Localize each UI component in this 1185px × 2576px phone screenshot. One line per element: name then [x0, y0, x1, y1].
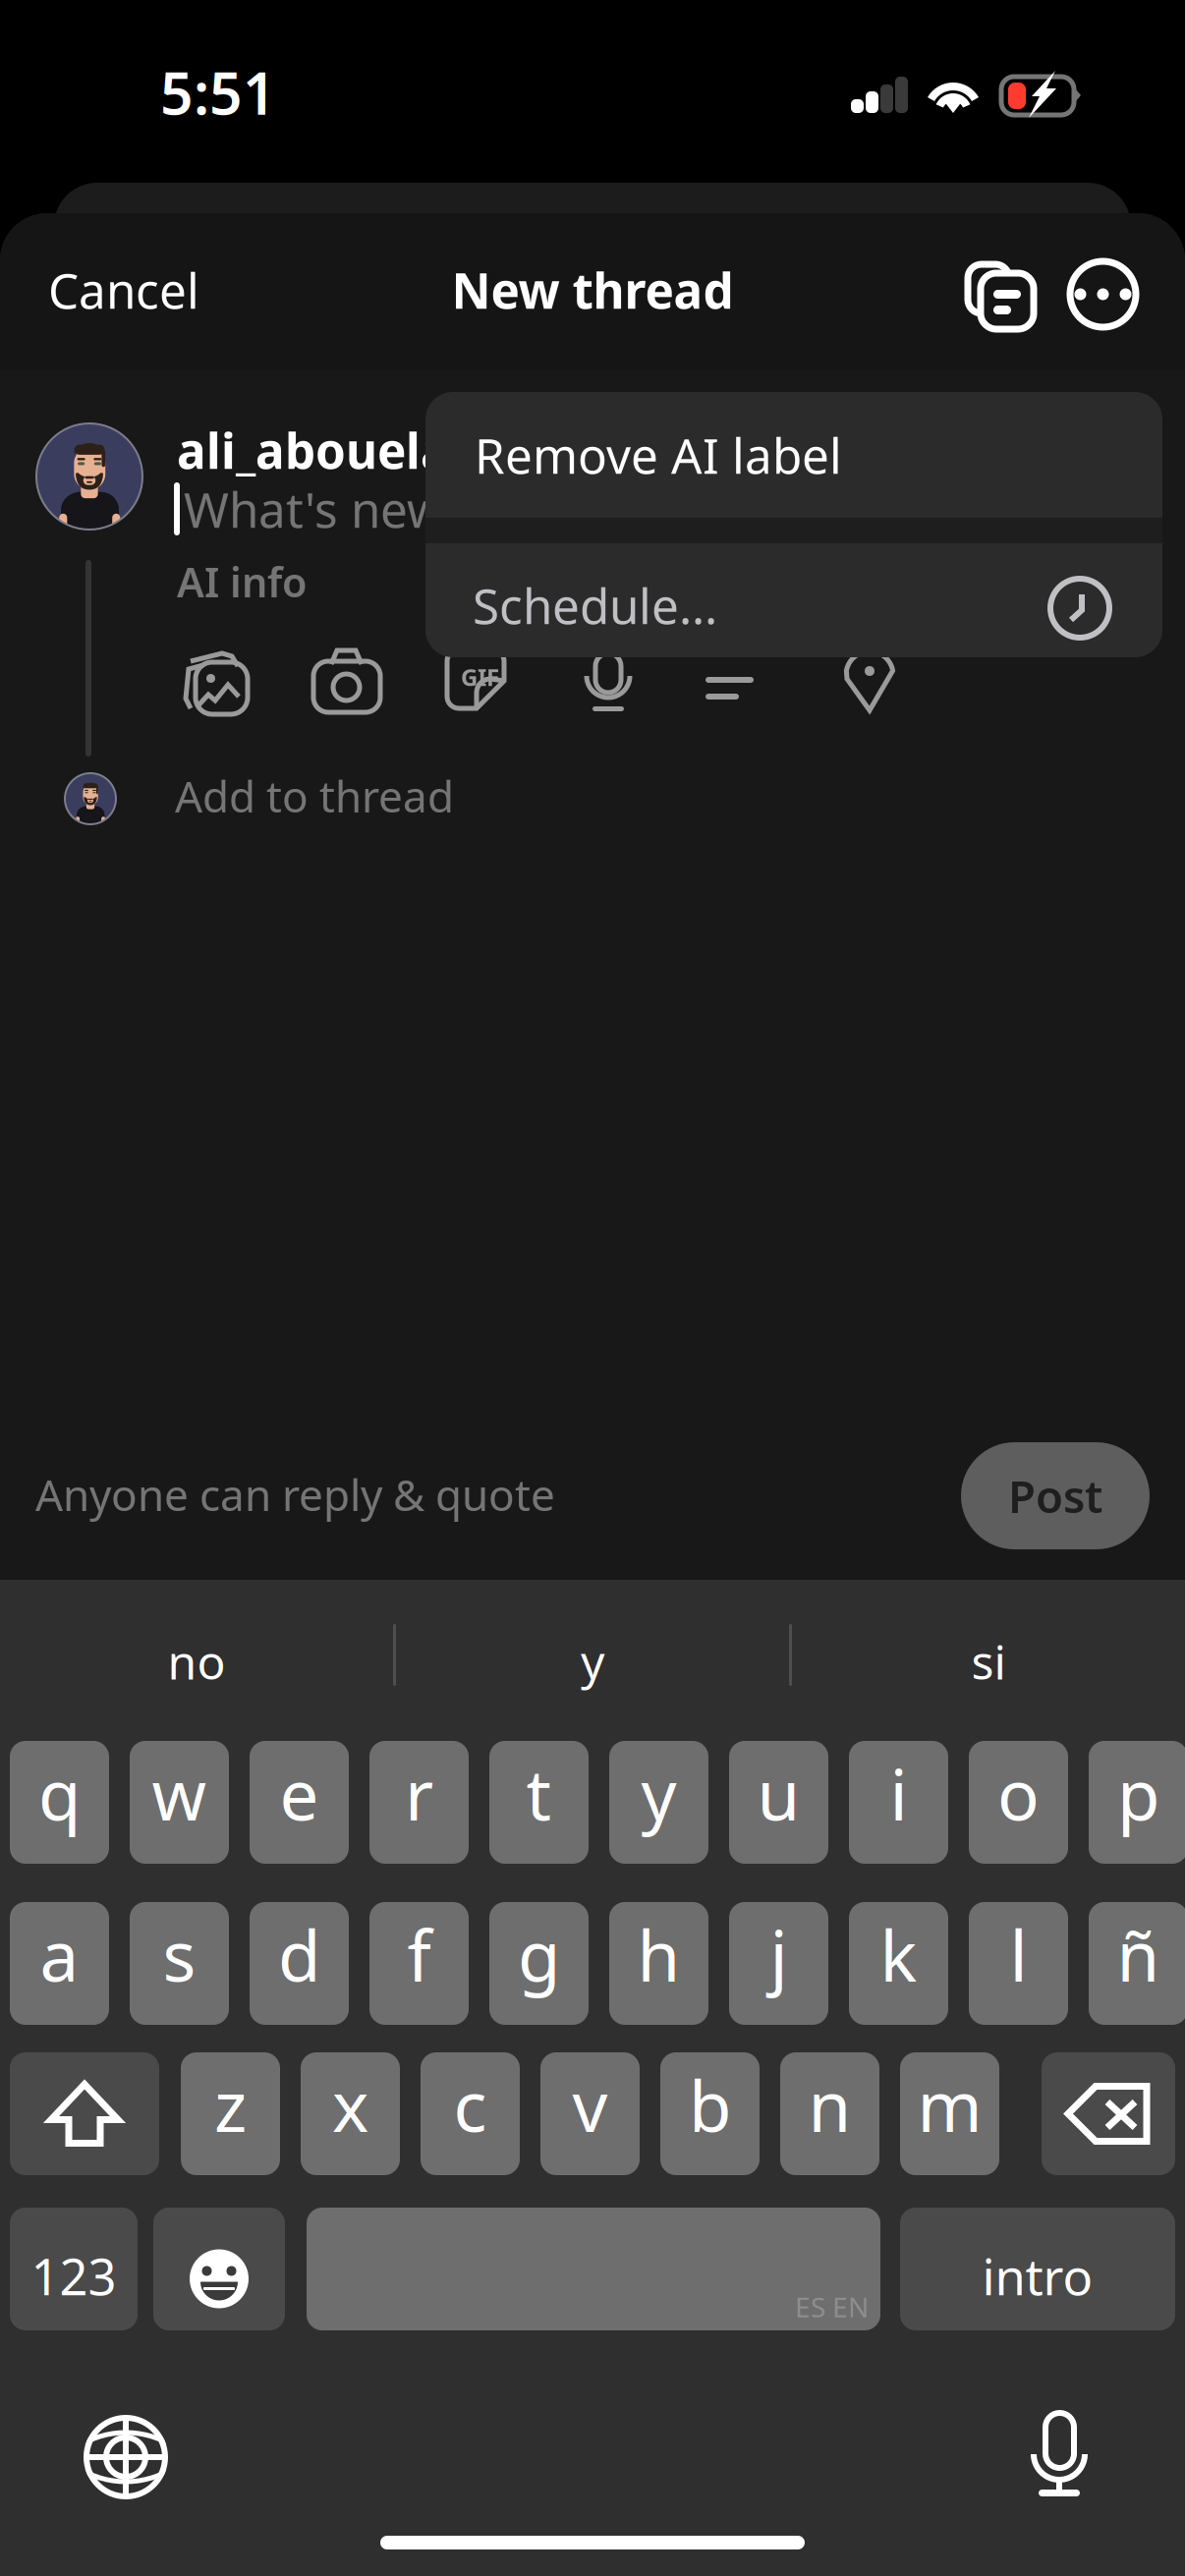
staticText: v: [572, 2059, 608, 2151]
button[interactable]: q: [10, 1741, 109, 1864]
button[interactable]: Remove AI label: [425, 392, 1113, 518]
button[interactable]: i: [849, 1741, 948, 1864]
button[interactable]: Post: [961, 1442, 1150, 1549]
staticText: w: [152, 1747, 207, 1840]
staticText: r: [405, 1747, 433, 1840]
staticText: 5:51: [160, 54, 276, 131]
button[interactable]: j: [729, 1902, 828, 2025]
button[interactable]: Location: [835, 645, 904, 716]
staticText: y: [581, 1630, 604, 1693]
button[interactable]: Text: [705, 645, 773, 716]
staticText: m: [917, 2059, 982, 2151]
staticText: u: [757, 1747, 800, 1840]
button[interactable]: z: [181, 2052, 280, 2175]
staticText: x: [332, 2059, 368, 2151]
staticText: New thread: [451, 258, 734, 322]
staticText: g: [518, 1909, 560, 2001]
button[interactable]: t: [489, 1741, 589, 1864]
button[interactable]: v: [540, 2052, 640, 2175]
button[interactable]: h: [609, 1902, 708, 2025]
button[interactable]: More options: [1066, 257, 1140, 331]
staticText: Post: [1008, 1466, 1102, 1525]
button[interactable]: u: [729, 1741, 828, 1864]
button[interactable]: n: [780, 2052, 879, 2175]
button[interactable]: Drafts: [965, 262, 1044, 341]
staticText: t: [526, 1747, 552, 1840]
button[interactable]: p: [1089, 1741, 1185, 1864]
staticText: ali_abouelatta: [177, 418, 521, 482]
button[interactable]: c: [421, 2052, 520, 2175]
staticText: y: [641, 1747, 677, 1840]
button[interactable]: Schedule...: [425, 543, 1162, 657]
staticText: l: [1010, 1909, 1027, 2001]
button[interactable]: ñ: [1089, 1902, 1185, 2025]
button[interactable]: d: [250, 1902, 349, 2025]
button[interactable]: y: [609, 1741, 708, 1864]
staticText: intro: [982, 2243, 1093, 2309]
staticText: What's new?: [184, 477, 467, 541]
button[interactable]: l: [969, 1902, 1068, 2025]
button[interactable]: Switch keyboard: [84, 2415, 168, 2499]
staticText: k: [880, 1909, 917, 2001]
staticText: z: [214, 2059, 247, 2151]
staticText: o: [997, 1747, 1040, 1840]
staticText: no: [168, 1630, 226, 1693]
staticText: d: [278, 1909, 320, 2001]
button[interactable]: intro: [900, 2208, 1175, 2330]
button[interactable]: x: [301, 2052, 400, 2175]
staticText: p: [1117, 1747, 1159, 1840]
button[interactable]: m: [900, 2052, 999, 2175]
button[interactable]: Add to thread: [175, 768, 588, 823]
button[interactable]: 123: [10, 2208, 138, 2330]
button[interactable]: Dictation: [1032, 2413, 1087, 2497]
button[interactable]: GIF: [445, 647, 514, 718]
button[interactable]: Backspace: [1042, 2052, 1175, 2175]
button[interactable]: Emoji: [153, 2208, 285, 2330]
button[interactable]: k: [849, 1902, 948, 2025]
staticText: e: [280, 1747, 319, 1840]
staticText: q: [38, 1747, 81, 1840]
button[interactable]: Space: [307, 2208, 880, 2330]
staticText: n: [808, 2059, 851, 2151]
staticText: Anyone can reply & quote: [35, 1466, 555, 1523]
button[interactable]: g: [489, 1902, 589, 2025]
staticText: si: [971, 1630, 1006, 1693]
staticText: GIF: [461, 661, 499, 693]
button[interactable]: AI info: [177, 558, 373, 605]
button[interactable]: o: [969, 1741, 1068, 1864]
button[interactable]: Audio: [574, 645, 643, 716]
staticText: i: [890, 1747, 907, 1840]
button[interactable]: a: [10, 1902, 109, 2025]
button[interactable]: e: [250, 1741, 349, 1864]
staticText: Add to thread: [175, 767, 454, 824]
staticText: ES EN: [795, 2289, 869, 2325]
staticText: ñ: [1117, 1909, 1160, 2001]
button[interactable]: s: [130, 1902, 229, 2025]
staticText: a: [40, 1909, 79, 2001]
staticText: f: [407, 1909, 431, 2001]
button[interactable]: w: [130, 1741, 229, 1864]
button[interactable]: Photos: [182, 645, 251, 716]
staticText: c: [453, 2059, 487, 2151]
staticText: 123: [31, 2243, 116, 2309]
button[interactable]: Camera: [312, 645, 381, 716]
staticText: s: [163, 1909, 196, 2001]
button[interactable]: f: [369, 1902, 469, 2025]
staticText: j: [770, 1909, 788, 2001]
staticText: Schedule...: [473, 573, 717, 637]
staticText: AI info: [177, 555, 308, 609]
button[interactable]: r: [369, 1741, 469, 1864]
button[interactable]: Cancel: [48, 241, 245, 339]
staticText: h: [637, 1909, 680, 2001]
staticText: Remove AI label: [475, 423, 842, 487]
button[interactable]: Shift: [10, 2052, 159, 2175]
staticText: b: [689, 2059, 731, 2151]
button[interactable]: b: [660, 2052, 760, 2175]
staticText: Cancel: [48, 258, 199, 322]
